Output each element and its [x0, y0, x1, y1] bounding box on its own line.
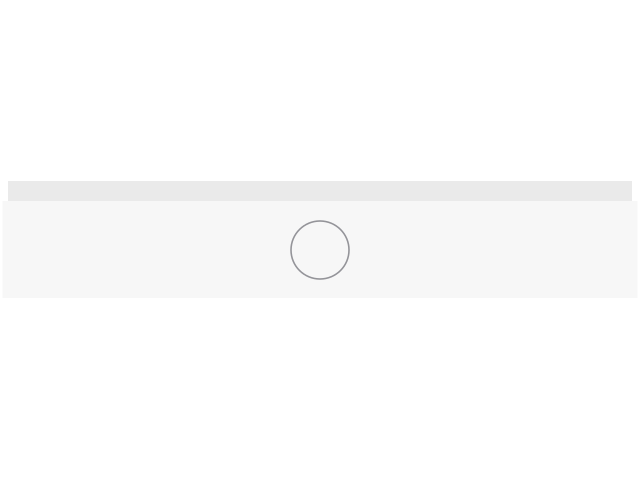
button[interactable]: Record [291, 221, 349, 279]
